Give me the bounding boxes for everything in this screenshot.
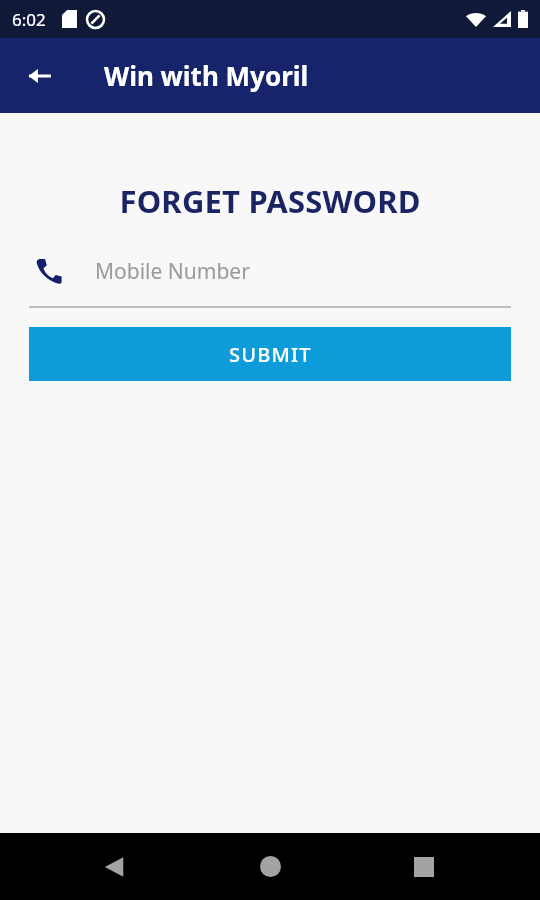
- staticText: FORGET PASSWORD: [0, 180, 540, 222]
- button[interactable]: Home: [234, 833, 306, 900]
- staticText: SUBMIT: [229, 341, 312, 368]
- button[interactable]: Mobile Number: [29, 246, 511, 308]
- staticText: Mobile Number: [95, 257, 250, 286]
- staticText: Win with Myoril: [104, 58, 309, 93]
- button[interactable]: Back: [78, 833, 150, 900]
- button[interactable]: SUBMIT: [29, 327, 511, 381]
- staticText: 6:02: [12, 8, 46, 31]
- button[interactable]: Recent apps: [388, 833, 460, 900]
- button[interactable]: Back: [16, 52, 64, 100]
